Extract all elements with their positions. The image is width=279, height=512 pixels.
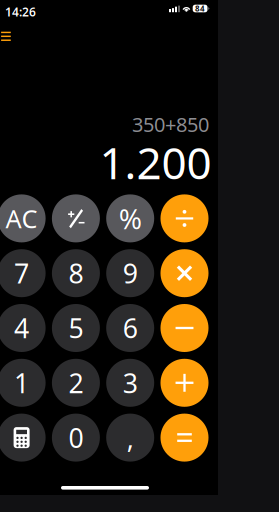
staticText: 0 bbox=[68, 420, 83, 455]
staticText: 8 bbox=[68, 255, 83, 291]
button[interactable]: 8 bbox=[52, 249, 100, 297]
button[interactable]: 4 bbox=[0, 304, 46, 352]
staticText: 1.200 bbox=[99, 133, 211, 191]
button[interactable]: AC bbox=[0, 194, 46, 242]
staticText: % bbox=[119, 200, 142, 237]
staticText: 9 bbox=[123, 255, 138, 291]
button[interactable]: 3 bbox=[106, 359, 154, 407]
button[interactable]: 0 bbox=[52, 414, 100, 462]
button[interactable]: Calculator bbox=[0, 414, 46, 462]
staticText: 350+850 bbox=[132, 111, 209, 138]
staticText: 1 bbox=[14, 365, 29, 400]
staticText: 7 bbox=[14, 255, 29, 291]
button[interactable]: Plus minus bbox=[52, 194, 100, 242]
button[interactable]: Plus bbox=[160, 359, 208, 407]
button[interactable]: 9 bbox=[106, 249, 154, 297]
staticText: 3 bbox=[123, 365, 138, 400]
staticText: 14:26 bbox=[5, 4, 36, 20]
staticText: 84 bbox=[195, 3, 205, 14]
staticText: , bbox=[127, 420, 134, 455]
staticText: 5 bbox=[68, 310, 83, 346]
staticText: 2 bbox=[68, 365, 83, 400]
button[interactable]: 5 bbox=[52, 304, 100, 352]
button[interactable]: 6 bbox=[106, 304, 154, 352]
staticText: 6 bbox=[123, 310, 138, 346]
button[interactable]: 1 bbox=[0, 359, 46, 407]
button[interactable]: Divide bbox=[160, 194, 208, 242]
button[interactable]: 7 bbox=[0, 249, 46, 297]
button[interactable]: Menu bbox=[0, 23, 20, 47]
button[interactable]: Multiply bbox=[160, 249, 208, 297]
button[interactable]: Equals bbox=[160, 414, 208, 462]
staticText: AC bbox=[6, 202, 38, 235]
button[interactable]: Minus bbox=[160, 304, 208, 352]
staticText: 4 bbox=[14, 310, 29, 346]
button[interactable]: % bbox=[106, 194, 154, 242]
button[interactable]: 2 bbox=[52, 359, 100, 407]
button[interactable]: , bbox=[106, 414, 154, 462]
